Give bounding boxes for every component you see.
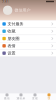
button[interactable]: 收藏 — [0, 28, 56, 35]
button[interactable]: 我 — [42, 93, 56, 100]
staticText: 微信用户 — [14, 8, 30, 13]
button[interactable]: 朋友圈 — [0, 35, 56, 42]
button[interactable]: 通讯录 — [14, 93, 28, 100]
button[interactable]: 微信 — [0, 93, 14, 100]
button[interactable]: 设置 — [0, 50, 56, 57]
button[interactable]: 表情 — [0, 42, 56, 50]
staticText: 设置 — [7, 51, 15, 56]
staticText: 支付服务 — [7, 21, 23, 26]
staticText: 9:41 — [2, 0, 9, 3]
staticText: 表情 — [7, 43, 15, 48]
staticText: 朋友圈 — [7, 36, 19, 41]
button[interactable]: 支付服务 — [0, 20, 56, 28]
button[interactable]: 发现 — [28, 93, 42, 100]
staticText: 通讯录 — [16, 97, 25, 100]
staticText: 微信 — [4, 97, 10, 100]
staticText: 收藏 — [7, 29, 15, 34]
staticText: 我 — [47, 97, 50, 100]
staticText: 发现 — [32, 97, 38, 100]
